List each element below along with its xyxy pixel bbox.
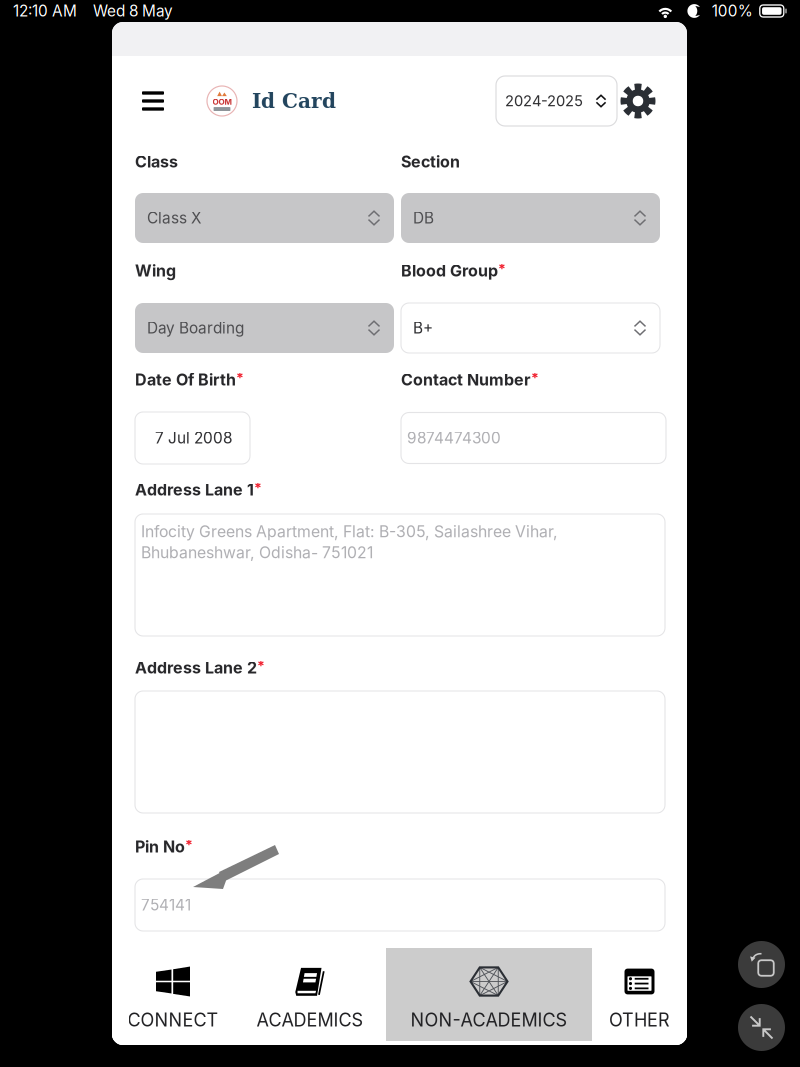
staticText: 100% — [712, 2, 753, 20]
staticText: Wed 8 May — [93, 2, 173, 20]
staticText: OOM — [212, 97, 231, 107]
staticText: Wing — [135, 261, 176, 280]
staticText: Class X — [147, 209, 201, 227]
staticText: * — [257, 658, 265, 675]
staticText: NON-ACADEMICS — [410, 1009, 567, 1031]
staticText: 2024-2025 — [505, 92, 583, 110]
staticText: Bhubaneshwar, Odisha- 751021 — [141, 543, 373, 562]
staticText: * — [185, 837, 193, 854]
button[interactable]: Shrink window — [738, 1004, 785, 1051]
staticText: Blood Group — [401, 261, 498, 280]
staticText: * — [498, 261, 506, 278]
staticText: Date Of Birth — [135, 370, 236, 389]
staticText: OTHER — [609, 1009, 670, 1031]
button[interactable]: 9874474300 — [401, 412, 666, 463]
button[interactable]: CONNECT — [112, 944, 234, 1045]
staticText: Address Lane 2 — [135, 658, 257, 677]
staticText: 7 Jul 2008 — [155, 429, 232, 447]
button[interactable]: 7 Jul 2008 — [135, 412, 250, 464]
button[interactable]: Day Boarding — [135, 303, 394, 353]
staticText: Address Lane 1 — [135, 480, 254, 499]
staticText: * — [236, 370, 244, 387]
staticText: Pin No — [135, 837, 185, 856]
staticText: Day Boarding — [147, 319, 244, 337]
staticText: 9874474300 — [407, 429, 501, 447]
staticText: 12:10 AM — [13, 2, 77, 20]
button[interactable]: Infocity Greens Apartment, Flat: B-305, … — [135, 514, 665, 636]
staticText: DB — [413, 209, 434, 227]
staticText: Class — [135, 152, 178, 171]
button[interactable]: Menu — [138, 80, 168, 122]
button[interactable]: ACADEMICS — [234, 944, 386, 1045]
button[interactable]: Rotate window — [738, 941, 785, 988]
button[interactable]: Settings — [620, 81, 656, 121]
button[interactable]: Class X — [135, 193, 394, 243]
button[interactable]: 754141 — [135, 879, 665, 931]
staticText: Id Card — [252, 89, 336, 113]
staticText: Contact Number — [401, 370, 531, 389]
button[interactable]: B+ — [401, 303, 660, 353]
staticText: * — [254, 480, 262, 497]
staticText: CONNECT — [127, 1009, 218, 1031]
staticText: ACADEMICS — [256, 1009, 363, 1031]
button[interactable]: DB — [401, 193, 660, 243]
staticText: Infocity Greens Apartment, Flat: B-305, … — [141, 522, 558, 541]
button[interactable]: 2024-2025 — [496, 76, 617, 126]
button[interactable]: OTHER — [592, 944, 687, 1045]
staticText: B+ — [413, 319, 433, 337]
staticText: 754141 — [141, 896, 191, 914]
staticText: * — [531, 370, 539, 387]
button[interactable]: NON-ACADEMICS — [386, 944, 592, 1045]
staticText: Section — [401, 152, 460, 171]
